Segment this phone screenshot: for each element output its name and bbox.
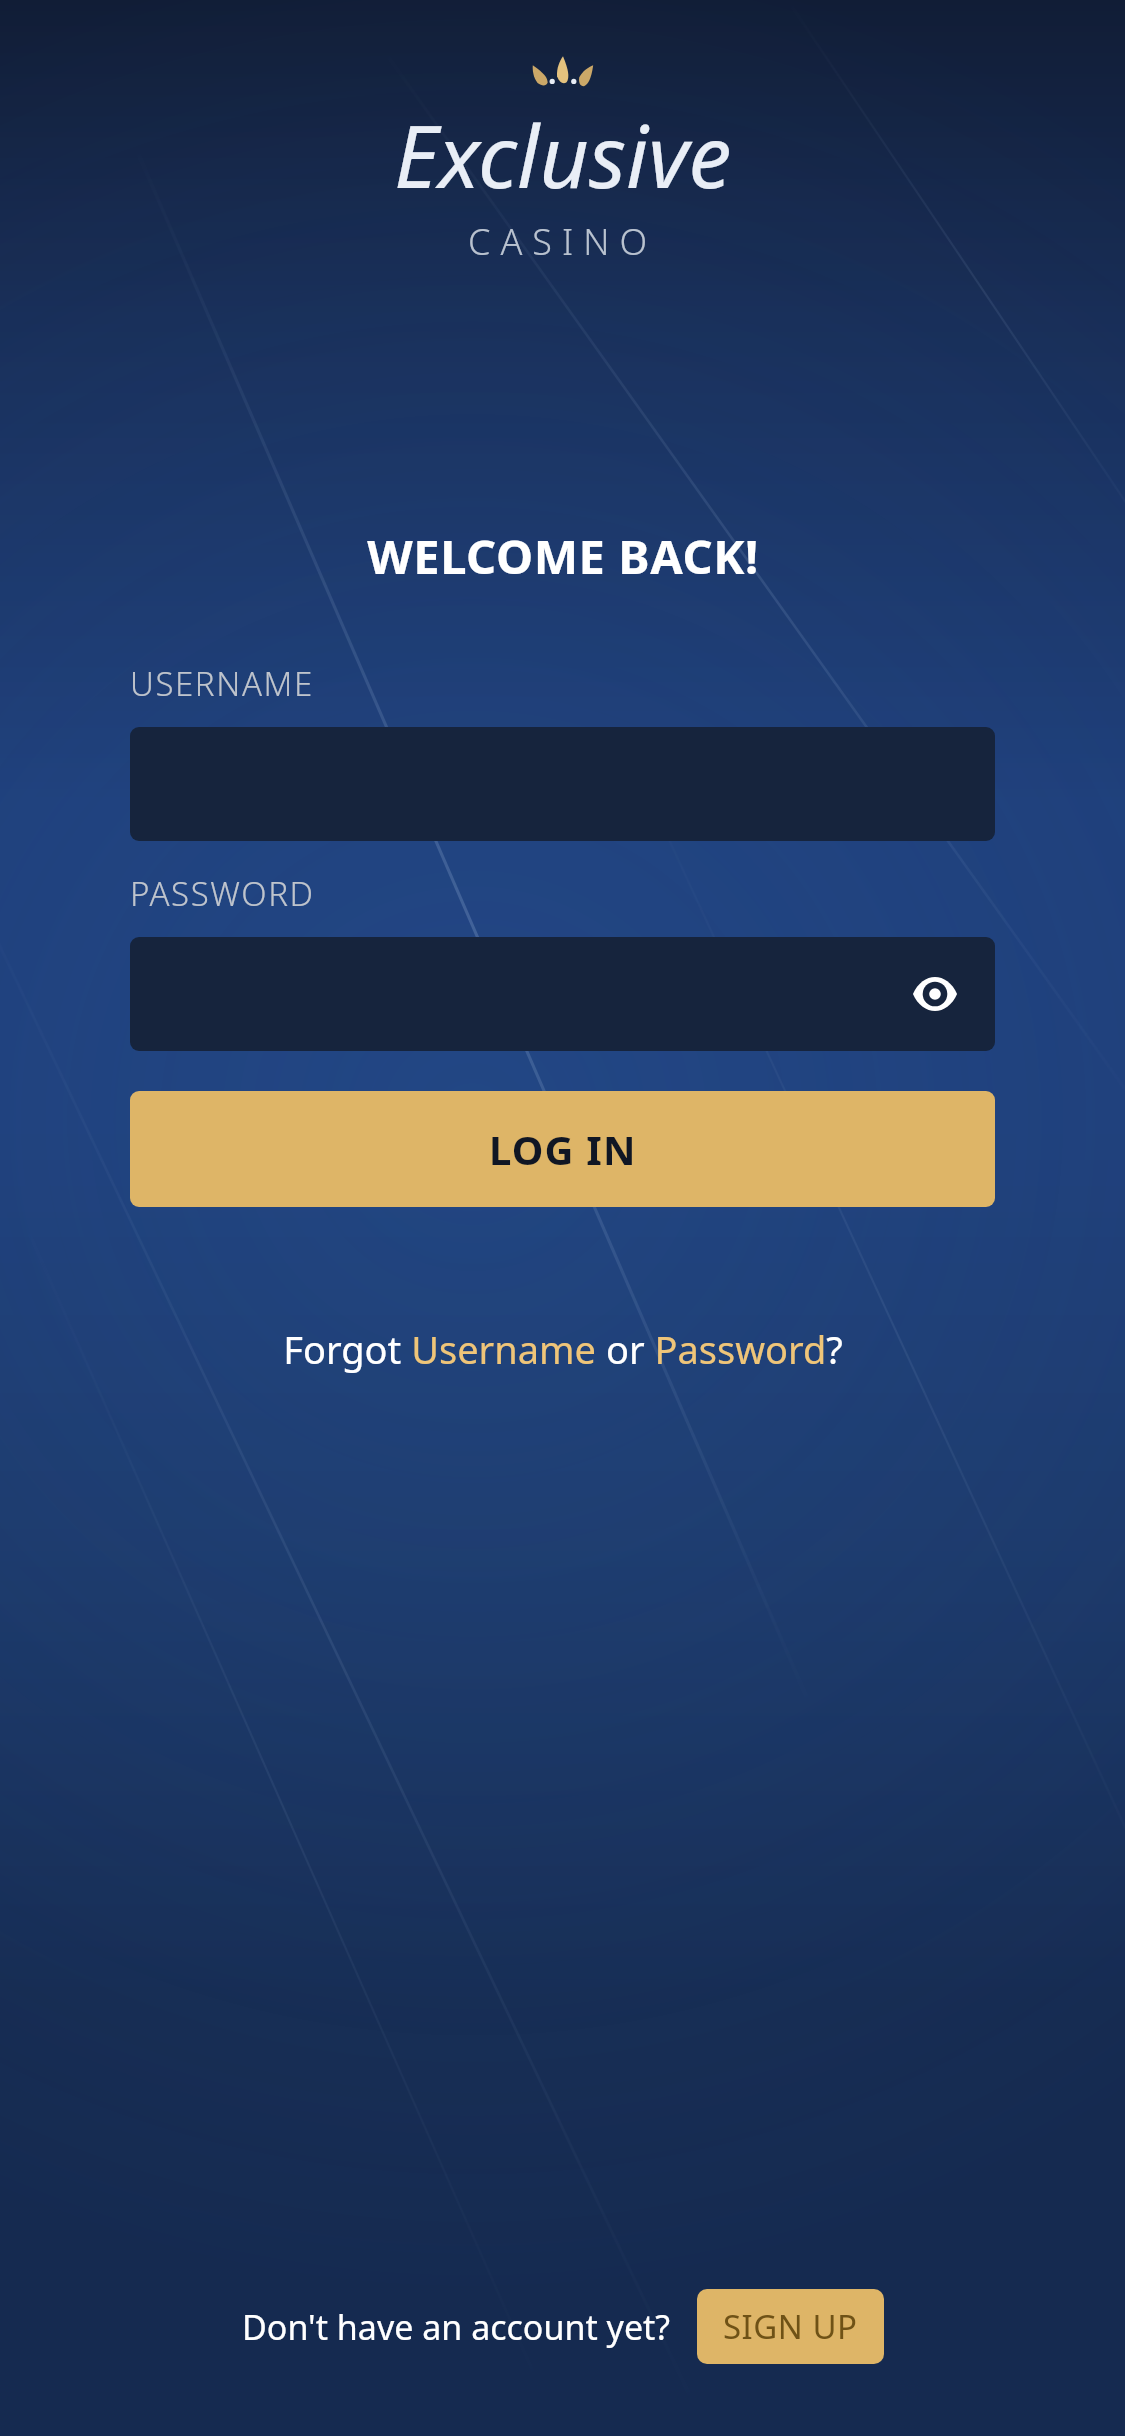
staticText: SIGN UP — [723, 2304, 858, 2349]
staticText: LOG IN — [489, 1122, 637, 1176]
staticText: USERNAME — [130, 661, 314, 706]
button[interactable]: Forgot Username or Password? — [267, 1315, 859, 1383]
button[interactable]: Don't have an account yet? — [242, 2304, 671, 2350]
staticText: PASSWORD — [130, 871, 315, 916]
staticText: Exclusive — [394, 96, 732, 213]
button[interactable]: SIGN UP — [697, 2289, 884, 2364]
staticText: CASINO — [468, 217, 658, 266]
button[interactable]: LOG IN — [130, 1091, 995, 1207]
button[interactable]: Show password — [130, 937, 995, 1051]
staticText: Forgot Username or Password? — [283, 1323, 843, 1375]
staticText: WELCOME BACK! — [367, 524, 759, 588]
button[interactable]: Show password — [903, 962, 967, 1026]
